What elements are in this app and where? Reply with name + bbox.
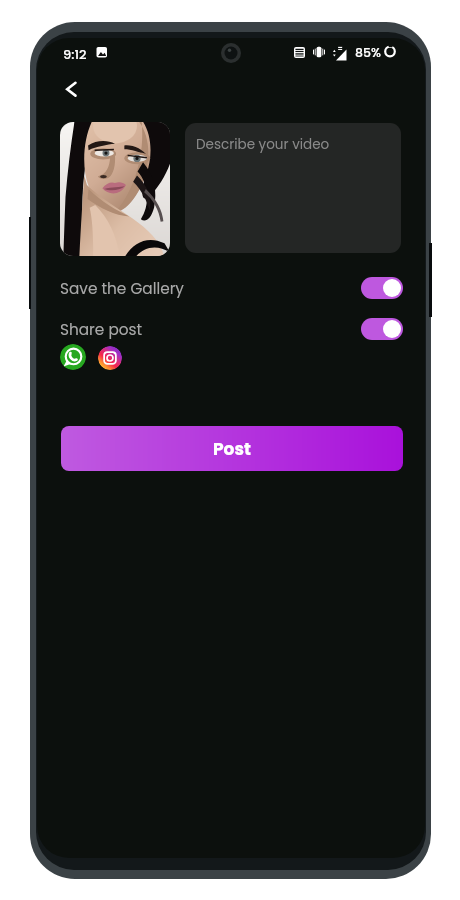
staticText: Share post bbox=[60, 319, 143, 340]
button[interactable]: Toggle bbox=[361, 318, 403, 340]
staticText: Save the Gallery bbox=[60, 278, 184, 299]
button[interactable]: Back bbox=[49, 67, 97, 115]
button[interactable]: Describe your video bbox=[185, 123, 401, 253]
staticText: 9:12 bbox=[63, 45, 87, 63]
button[interactable]: Share post bbox=[56, 312, 403, 346]
staticText: Post bbox=[213, 437, 251, 461]
button[interactable]: Toggle bbox=[361, 277, 403, 299]
button[interactable]: Post bbox=[61, 426, 403, 471]
button[interactable]: Video thumbnail bbox=[60, 122, 170, 256]
staticText: Describe your video bbox=[196, 135, 330, 154]
staticText: 85% bbox=[355, 44, 381, 61]
button[interactable]: Share on WhatsApp bbox=[60, 344, 86, 370]
button[interactable]: Share on Instagram bbox=[98, 346, 122, 370]
button[interactable]: Save the Gallery bbox=[56, 271, 403, 305]
